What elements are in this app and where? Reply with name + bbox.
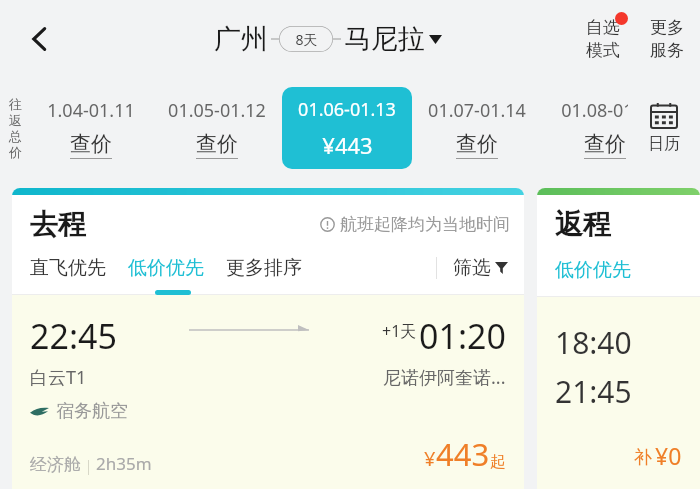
button[interactable]: 低价优先 <box>128 253 204 283</box>
other: 日历 <box>651 103 677 128</box>
staticText: ¥0 <box>655 440 682 471</box>
staticText: 往 <box>9 96 22 112</box>
button[interactable]: 22:45 <box>12 295 524 489</box>
staticText: 01.08-01.1 <box>561 98 649 123</box>
staticText: 查价 <box>196 131 238 157</box>
staticText: ¥443 <box>322 130 373 160</box>
button[interactable]: 01.06-01.13 <box>282 87 412 169</box>
staticText: 去程 <box>30 207 86 242</box>
staticText: 总 <box>9 128 22 144</box>
staticText: 22:45 <box>30 313 117 359</box>
staticText: 01.05-01.12 <box>168 98 266 123</box>
button[interactable]: 01.05-01.12 <box>152 87 282 169</box>
staticText: 尼诺伊阿奎诺... <box>383 365 506 390</box>
staticText: 广州 <box>214 22 268 56</box>
staticText: 起 <box>490 452 506 472</box>
staticText: 更多排序 <box>226 256 302 280</box>
button[interactable]: 直飞优先 <box>30 253 106 283</box>
staticText: 自选 <box>586 17 620 38</box>
button[interactable]: 01.08-01.1 <box>542 87 667 169</box>
staticText: 低价优先 <box>128 256 204 280</box>
staticText: 01.07-01.14 <box>428 98 526 123</box>
staticText: 宿务航空 <box>56 400 128 423</box>
staticText: 返程 <box>555 207 611 242</box>
staticText: 补 <box>634 446 652 469</box>
button[interactable]: 低价优先 <box>555 255 631 285</box>
button[interactable]: 01.07-01.14 <box>412 87 542 169</box>
staticText: 返 <box>9 112 22 128</box>
staticText: 日历 <box>648 134 680 154</box>
button[interactable]: 1.04-01.11 <box>30 87 152 169</box>
staticText: 价 <box>9 144 22 160</box>
staticText: 查价 <box>584 131 626 157</box>
staticText: 443 <box>436 433 490 475</box>
staticText: 白云T1 <box>30 365 87 390</box>
staticText: 8天 <box>295 30 318 49</box>
staticText: 经济舱 <box>30 454 81 475</box>
staticText: 2h35m <box>96 452 152 475</box>
staticText: 筛选 <box>453 256 491 280</box>
staticText: 1.04-01.11 <box>47 98 135 123</box>
staticText: 更多 <box>650 17 684 38</box>
staticText: 马尼拉 <box>344 22 425 56</box>
staticText: 01:20 <box>419 313 506 359</box>
button[interactable]: 筛选 <box>451 253 510 283</box>
staticText: 查价 <box>456 131 498 157</box>
button[interactable]: Back <box>14 13 66 65</box>
button[interactable]: 更多排序 <box>226 253 302 283</box>
staticText: ¥ <box>424 445 436 472</box>
staticText: 21:45 <box>555 371 632 412</box>
staticText: 航班起降均为当地时间 <box>340 214 510 235</box>
staticText: 直飞优先 <box>30 256 106 280</box>
staticText: 01.06-01.13 <box>298 97 396 122</box>
staticText: 查价 <box>70 131 112 157</box>
staticText: 低价优先 <box>555 258 631 282</box>
button[interactable]: 广州 <box>214 22 442 56</box>
staticText: 服务 <box>650 40 684 61</box>
staticText: 18:40 <box>555 322 632 363</box>
button[interactable]: 18:40 <box>537 297 700 489</box>
staticText: +1天 <box>382 320 417 342</box>
button[interactable]: 日历 <box>628 78 700 178</box>
button[interactable]: 自选 <box>576 13 630 65</box>
staticText: 模式 <box>586 40 620 61</box>
button[interactable]: 更多 <box>642 13 692 65</box>
